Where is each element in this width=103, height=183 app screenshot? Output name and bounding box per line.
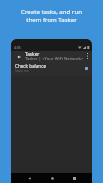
staticText: 4:05 <box>14 45 21 50</box>
staticText: Create tasks, and run them from Tasker <box>21 7 82 24</box>
staticText: Tap to run <box>15 69 29 73</box>
button[interactable]: Navigate up <box>13 51 24 62</box>
staticText: Check balance <box>15 63 46 69</box>
button[interactable]: More options <box>82 51 92 61</box>
staticText: Tasker <box>25 51 40 57</box>
button[interactable]: Recent apps <box>70 174 78 182</box>
button[interactable]: Back <box>25 174 33 182</box>
button[interactable]: Run task <box>85 67 88 70</box>
staticText: Tasker | <Your WiFi Network> <box>25 56 84 62</box>
button[interactable]: Home <box>48 174 56 182</box>
